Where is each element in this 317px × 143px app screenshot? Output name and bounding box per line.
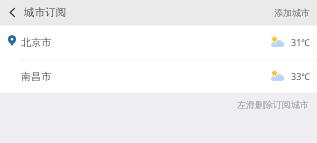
staticText: 31℃ — [291, 36, 311, 48]
button[interactable]: Back — [0, 0, 24, 25]
staticText: 33℃ — [291, 70, 311, 82]
staticText: 左滑删除订阅城市 — [237, 99, 309, 110]
staticText: 添加城市 — [274, 7, 310, 18]
staticText: 南昌市 — [21, 70, 51, 83]
staticText: 北京市 — [21, 36, 51, 49]
staticText: 城市订阅 — [24, 6, 66, 19]
button[interactable]: 添加城市 — [267, 2, 317, 23]
button[interactable]: 北京市 — [0, 25, 317, 59]
button[interactable]: 南昌市 — [0, 59, 317, 93]
